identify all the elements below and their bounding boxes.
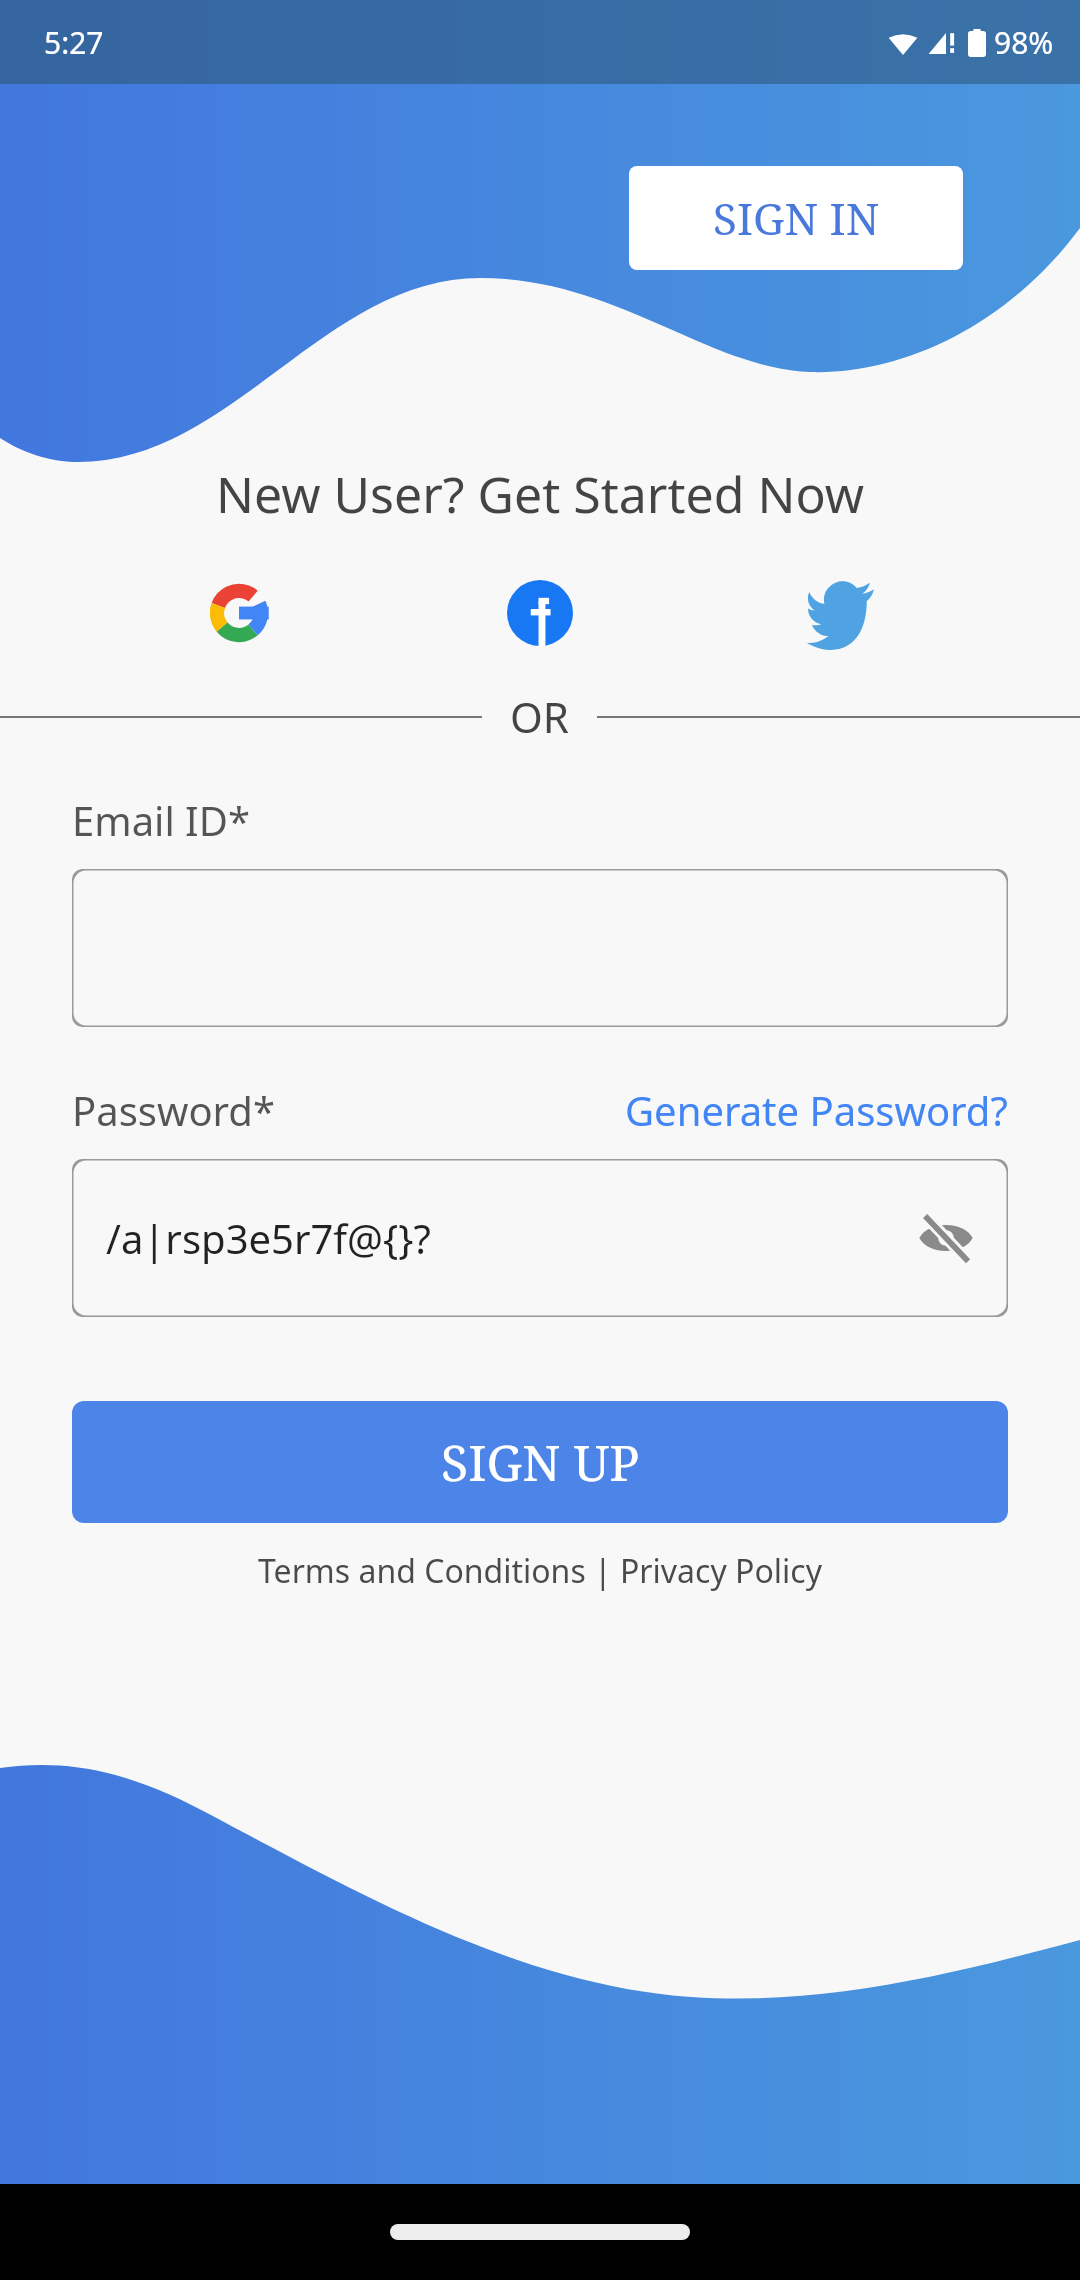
staticText: SIGN UP — [441, 1428, 640, 1496]
button[interactable]: Terms and Conditions | Privacy Policy — [258, 1549, 822, 1593]
staticText: New User? Get Started Now — [216, 460, 864, 528]
button[interactable]: Sign in with Twitter — [802, 574, 880, 652]
staticText: Terms and Conditions | Privacy Policy — [258, 1549, 822, 1593]
staticText: 98% — [994, 22, 1054, 63]
button[interactable]: Hide password — [910, 1202, 982, 1274]
button[interactable]: SIGN UP — [72, 1401, 1008, 1523]
staticText: SIGN IN — [713, 188, 880, 248]
staticText: /a|rsp3e5r7f@{}? — [106, 1211, 431, 1265]
button[interactable]: Sign in with Google — [200, 574, 278, 652]
button[interactable]: /a|rsp3e5r7f@{}? — [72, 1159, 1008, 1317]
staticText: OR — [510, 688, 569, 745]
button[interactable]: SIGN IN — [629, 166, 963, 270]
button[interactable]: Email ID input — [72, 869, 1008, 1027]
staticText: Email ID* — [72, 793, 250, 847]
staticText: Password* — [72, 1083, 275, 1137]
button[interactable]: Sign in with Facebook — [501, 574, 579, 652]
staticText: 5:27 — [44, 22, 104, 63]
staticText: Generate Password? — [625, 1083, 1008, 1137]
button[interactable]: Generate Password? — [625, 1083, 1008, 1137]
